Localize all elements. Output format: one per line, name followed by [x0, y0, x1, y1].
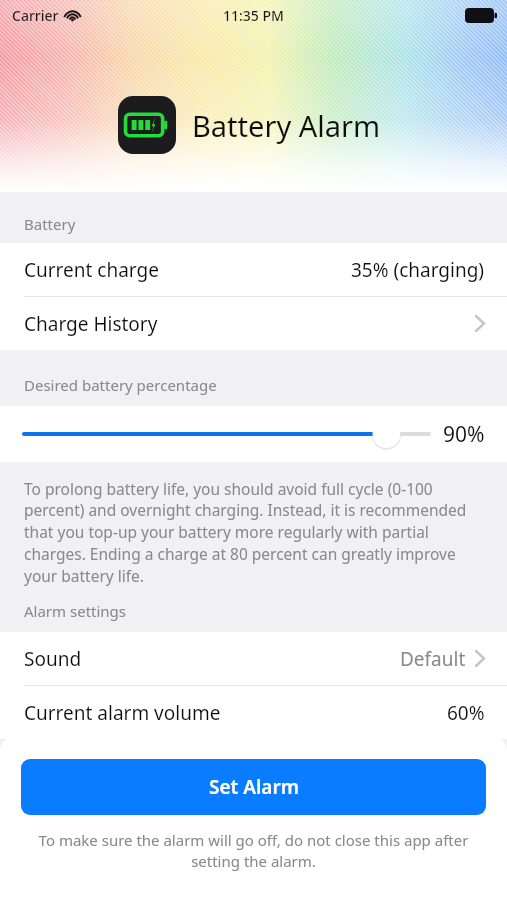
button[interactable]: Sound	[0, 632, 507, 685]
staticText: Desired battery percentage	[24, 375, 217, 395]
button[interactable]: Set Alarm	[21, 759, 486, 815]
button[interactable]: Charge History	[0, 297, 507, 350]
staticText: To prolong battery life, you should avoi…	[24, 478, 481, 587]
staticText: Battery	[24, 214, 76, 234]
staticText: Carrier	[12, 6, 59, 25]
staticText: 35% (charging)	[351, 257, 485, 283]
staticText: Current alarm volume	[24, 700, 221, 726]
staticText: Battery Alarm	[192, 106, 381, 145]
staticText: Alarm settings	[24, 601, 127, 621]
staticText: 11:35 PM	[223, 6, 284, 25]
staticText: To make sure the alarm will go off, do n…	[21, 830, 486, 872]
button[interactable]: Current alarm volume	[0, 686, 507, 739]
button[interactable]: Desired battery percentage slider	[24, 419, 429, 449]
staticText: 60%	[447, 700, 485, 726]
staticText: Current charge	[24, 257, 159, 283]
button[interactable]: Current charge	[0, 243, 507, 296]
staticText: Set Alarm	[209, 774, 299, 800]
staticText: Sound	[24, 646, 82, 672]
staticText: 90%	[443, 420, 485, 449]
staticText: Default	[400, 646, 466, 672]
staticText: Charge History	[24, 311, 158, 337]
